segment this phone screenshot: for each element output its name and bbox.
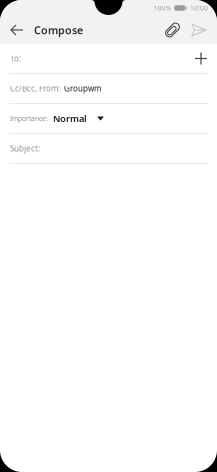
button[interactable]: Back bbox=[5, 17, 29, 43]
staticText: 100% bbox=[154, 4, 172, 12]
staticText: To: bbox=[10, 53, 21, 64]
staticText: 10:00 bbox=[190, 4, 208, 12]
button[interactable]: To: bbox=[0, 44, 217, 73]
staticText: Normal bbox=[53, 112, 87, 125]
button[interactable]: Attach file bbox=[159, 15, 186, 44]
staticText: Groupwm bbox=[64, 83, 101, 94]
staticText: Cc/Bcc, From: bbox=[10, 83, 60, 94]
staticText: Subject: bbox=[10, 143, 40, 154]
button[interactable]: Cc/Bcc, From: bbox=[0, 74, 217, 103]
staticText: Importance: bbox=[10, 114, 48, 123]
button[interactable]: Importance: bbox=[0, 104, 217, 133]
button[interactable]: Subject: bbox=[0, 134, 217, 163]
button[interactable]: Send bbox=[186, 16, 212, 44]
staticText: Compose bbox=[34, 23, 83, 37]
